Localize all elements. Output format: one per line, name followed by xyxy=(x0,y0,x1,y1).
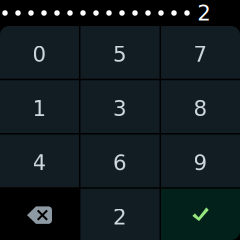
staticText: 9 xyxy=(193,150,207,175)
staticText: 7 xyxy=(193,42,207,67)
button[interactable]: 7 xyxy=(161,26,240,79)
button[interactable]: 8 xyxy=(161,80,240,133)
staticText: 1 xyxy=(32,96,46,121)
staticText: 8 xyxy=(193,96,207,121)
staticText: 2 xyxy=(113,205,127,229)
staticText: 3 xyxy=(113,96,127,121)
staticText: 0 xyxy=(32,42,46,67)
staticText: 5 xyxy=(113,42,127,67)
staticText: 2 xyxy=(197,1,211,25)
button[interactable]: 3 xyxy=(80,80,159,133)
button[interactable]: 1 xyxy=(0,80,79,133)
button[interactable]: 2 xyxy=(80,189,159,240)
button[interactable]: Confirm xyxy=(161,189,240,240)
button[interactable]: 5 xyxy=(80,26,159,79)
button[interactable]: Delete xyxy=(0,189,79,240)
button[interactable]: 9 xyxy=(161,134,240,187)
button[interactable]: 0 xyxy=(0,26,79,79)
staticText: 4 xyxy=(32,150,46,175)
button[interactable]: 6 xyxy=(80,134,159,187)
button[interactable]: 4 xyxy=(0,134,79,187)
staticText: 6 xyxy=(113,150,127,175)
